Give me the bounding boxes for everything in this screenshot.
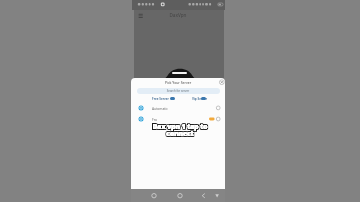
staticText: Dax vpn 1 tap to — [120, 123, 240, 135]
button[interactable] — [136, 11, 146, 21]
staticText: connect — [119, 128, 239, 140]
button[interactable]: Free Server — [152, 97, 176, 102]
staticText: connect — [119, 129, 239, 141]
button[interactable] — [172, 189, 188, 202]
staticText: connect — [121, 128, 241, 140]
button[interactable] — [137, 88, 220, 94]
staticText: connect — [120, 129, 240, 141]
staticText: connect — [120, 129, 240, 141]
button[interactable]: Fra — [133, 114, 223, 124]
button[interactable] — [196, 189, 212, 202]
button[interactable]: Vip Server — [192, 97, 214, 102]
staticText: connect — [120, 128, 240, 140]
staticText: Dax vpn 1 tap to — [120, 122, 240, 134]
staticText: Pick Your Server — [148, 80, 208, 86]
staticText: Dax vpn 1 tap to — [121, 123, 241, 135]
staticText: Dax vpn 1 tap to — [119, 122, 239, 134]
staticText: connect — [120, 129, 240, 141]
staticText: Search for server — [160, 89, 196, 93]
staticText: Dax vpn 1 tap to — [119, 121, 239, 133]
staticText: Dax vpn 1 tap to — [119, 123, 239, 135]
staticText: connect — [121, 130, 241, 142]
staticText: connect — [119, 130, 239, 142]
button[interactable] — [146, 189, 162, 202]
staticText: Dax vpn 1 tap to — [121, 122, 241, 134]
button[interactable] — [218, 78, 227, 87]
staticText: Dax vpn 1 tap to — [120, 122, 240, 134]
staticText: connect — [120, 130, 240, 142]
staticText: Automatic — [152, 106, 168, 110]
button[interactable] — [211, 189, 224, 202]
staticText: Free Server — [152, 97, 169, 101]
button[interactable]: Automatic — [133, 103, 223, 113]
staticText: Dax vpn 1 tap to — [120, 122, 240, 134]
staticText: Dax vpn 1 tap to — [120, 121, 240, 133]
staticText: Fra — [152, 117, 157, 121]
staticText: connect — [121, 129, 241, 141]
staticText: Vip Server — [192, 97, 208, 101]
staticText: Dax vpn 1 tap to — [121, 121, 241, 133]
staticText: DaxVpn — [160, 12, 196, 20]
